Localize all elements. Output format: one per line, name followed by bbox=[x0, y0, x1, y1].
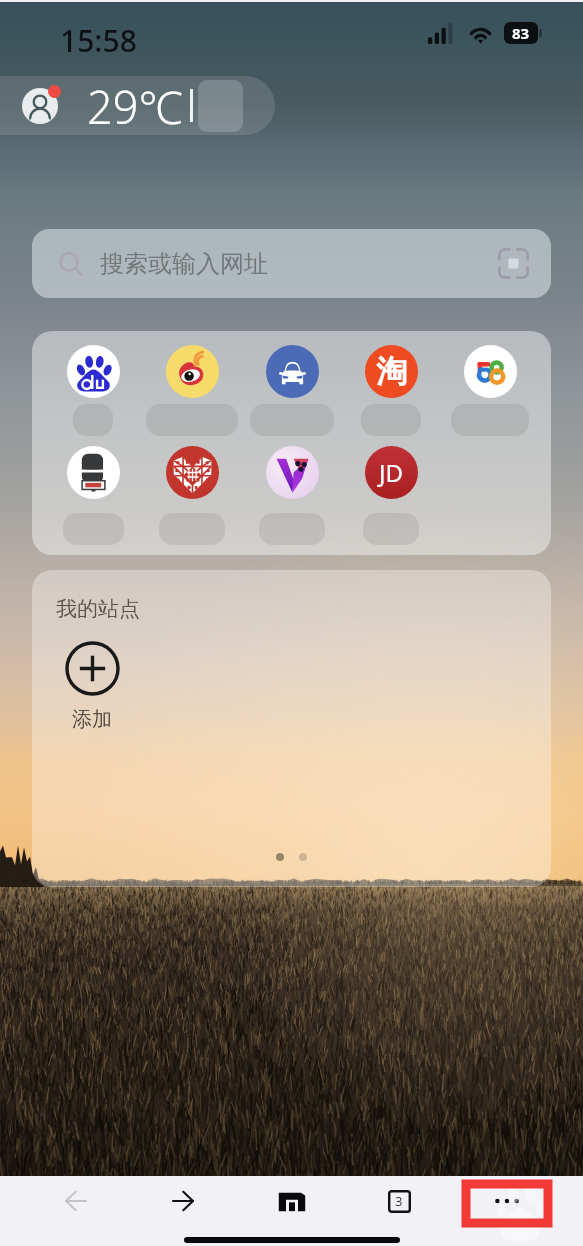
button[interactable]: 29℃ bbox=[0, 76, 275, 135]
button[interactable]: baidu bbox=[47, 345, 139, 436]
button[interactable]: Scan QR code bbox=[498, 248, 529, 279]
button[interactable]: wuba bbox=[444, 345, 536, 436]
button[interactable]: Home bbox=[265, 1180, 319, 1222]
staticText: 添加 bbox=[72, 707, 112, 732]
button[interactable]: taobao bbox=[345, 345, 437, 436]
button[interactable]: v bbox=[246, 446, 338, 545]
button[interactable]: Forward bbox=[156, 1180, 210, 1222]
staticText: JD bbox=[379, 456, 404, 489]
button[interactable]: heart bbox=[146, 446, 238, 545]
staticText: 搜索或输入网址 bbox=[100, 249, 268, 279]
staticText: 15:58 bbox=[60, 20, 137, 61]
button[interactable]: jd bbox=[345, 446, 437, 545]
button[interactable]: 搜索或输入网址 bbox=[32, 229, 551, 298]
button[interactable]: Tabs, 3 open bbox=[372, 1180, 426, 1222]
button[interactable]: car bbox=[246, 345, 338, 436]
staticText: 83 bbox=[512, 23, 530, 43]
button[interactable]: news bbox=[47, 446, 139, 545]
staticText: 淘 bbox=[376, 352, 407, 391]
button[interactable]: Menu bbox=[480, 1180, 534, 1222]
button[interactable]: Back bbox=[49, 1180, 103, 1222]
staticText: 我的站点 bbox=[56, 596, 140, 622]
staticText: 29℃ bbox=[87, 76, 183, 135]
button[interactable]: 添加 bbox=[56, 641, 128, 732]
button[interactable]: weibo bbox=[146, 345, 238, 436]
staticText: 3 bbox=[395, 1192, 403, 1210]
